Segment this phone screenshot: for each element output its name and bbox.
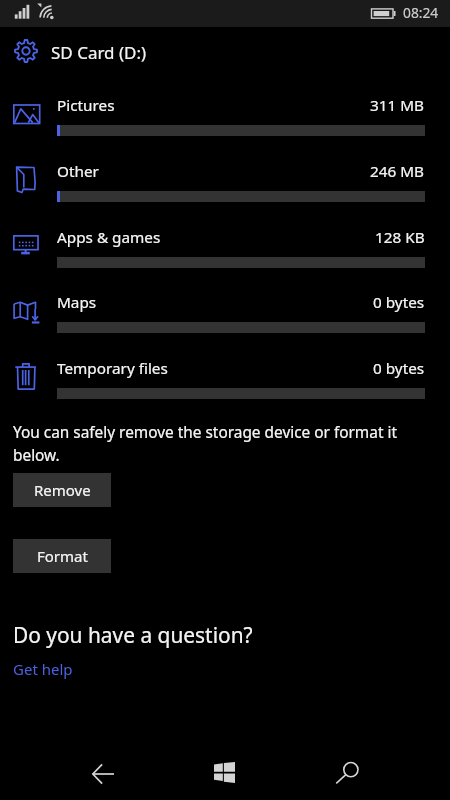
button[interactable]: Apps & games xyxy=(0,218,450,280)
button[interactable]: Search xyxy=(318,756,378,790)
button[interactable]: Pictures xyxy=(0,86,450,148)
staticText: Format xyxy=(37,546,88,566)
staticText: 128 KB xyxy=(375,227,425,248)
staticText: Other xyxy=(57,161,99,182)
staticText: Pictures xyxy=(57,95,115,116)
staticText: Maps xyxy=(57,292,97,313)
button[interactable]: Back xyxy=(73,757,133,791)
button[interactable]: Other xyxy=(0,152,450,214)
button[interactable]: Temporary files xyxy=(0,349,450,411)
button[interactable]: Format xyxy=(13,539,111,573)
staticText: Do you have a question? xyxy=(13,621,253,649)
staticText: 0 bytes xyxy=(373,292,425,313)
staticText: You can safely remove the storage device… xyxy=(13,422,413,466)
button[interactable]: Remove xyxy=(13,473,111,507)
staticText: Temporary files xyxy=(57,358,168,379)
button[interactable]: Start xyxy=(194,755,254,789)
button[interactable]: Maps xyxy=(0,283,450,345)
staticText: Apps & games xyxy=(57,227,161,248)
staticText: Remove xyxy=(34,480,91,500)
button[interactable]: Get help xyxy=(13,657,73,681)
staticText: 311 MB xyxy=(370,95,425,116)
staticText: 0 bytes xyxy=(373,358,425,379)
staticText: 246 MB xyxy=(370,161,425,182)
staticText: 08:24 xyxy=(403,3,439,22)
staticText: Get help xyxy=(13,659,73,679)
button[interactable]: SD Card (D:) xyxy=(0,38,450,68)
staticText: SD Card (D:) xyxy=(51,41,147,64)
